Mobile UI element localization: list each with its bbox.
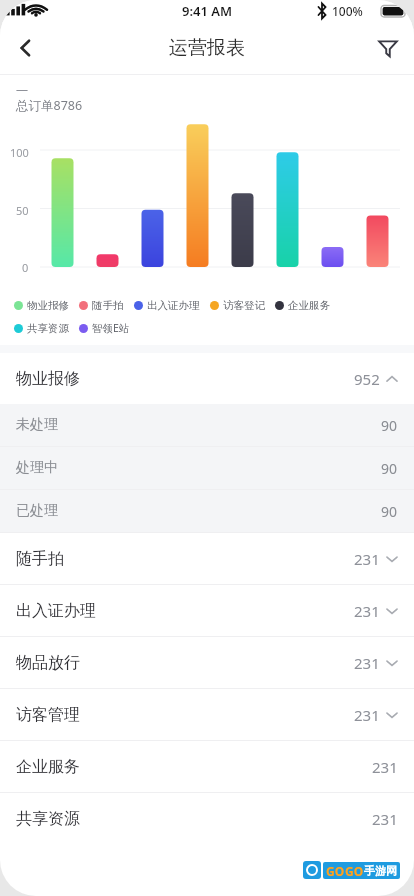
staticText: 共享资源 — [27, 322, 69, 335]
staticText: 952 — [354, 369, 380, 389]
button[interactable]: 企业服务 — [0, 741, 414, 792]
staticText: 9:41 AM — [182, 2, 233, 20]
button[interactable]: 未处理 — [0, 404, 414, 446]
staticText: 231 — [354, 653, 380, 673]
staticText: 50 — [16, 203, 29, 218]
staticText: GO — [345, 863, 364, 879]
staticText: 共享资源 — [16, 809, 80, 829]
button[interactable]: 共享资源 — [0, 793, 414, 844]
staticText: 231 — [372, 809, 398, 829]
staticText: 随手拍 — [16, 549, 64, 569]
staticText: 总订单8786 — [16, 97, 83, 114]
staticText: 物业报修 — [27, 299, 69, 312]
staticText: 90 — [381, 502, 398, 521]
staticText: 手游网 — [364, 864, 397, 878]
staticText: 运营报表 — [169, 36, 245, 60]
staticText: 处理中 — [16, 459, 58, 477]
staticText: 231 — [354, 549, 380, 569]
staticText: GO — [326, 863, 345, 879]
staticText: 企业服务 — [288, 299, 330, 312]
button[interactable]: Back — [0, 22, 52, 74]
staticText: 0 — [22, 260, 29, 275]
staticText: 100 — [10, 145, 29, 160]
staticText: 出入证办理 — [147, 299, 200, 312]
staticText: 90 — [381, 459, 398, 478]
staticText: 访客管理 — [16, 705, 80, 725]
button[interactable]: 物品放行 — [0, 637, 414, 688]
staticText: — — [16, 81, 29, 97]
staticText: 物业报修 — [16, 369, 80, 389]
staticText: 未处理 — [16, 416, 58, 434]
staticText: 出入证办理 — [16, 601, 96, 621]
button[interactable]: 物业报修 — [0, 353, 414, 404]
button[interactable]: 出入证办理 — [0, 585, 414, 636]
button[interactable]: 处理中 — [0, 447, 414, 489]
button[interactable]: 已处理 — [0, 490, 414, 532]
staticText: 企业服务 — [16, 757, 80, 777]
button[interactable]: 访客管理 — [0, 689, 414, 740]
staticText: 90 — [381, 416, 398, 435]
staticText: 访客登记 — [223, 299, 265, 312]
staticText: 231 — [354, 705, 380, 725]
staticText: 物品放行 — [16, 653, 80, 673]
staticText: 已处理 — [16, 502, 58, 520]
button[interactable]: 随手拍 — [0, 533, 414, 584]
staticText: 231 — [372, 757, 398, 777]
staticText: 100% — [332, 3, 363, 19]
staticText: 智领E站 — [92, 321, 130, 335]
staticText: 随手拍 — [92, 299, 124, 312]
staticText: 231 — [354, 601, 380, 621]
button[interactable]: Filter — [362, 22, 414, 74]
